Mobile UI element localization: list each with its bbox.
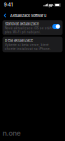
button[interactable]: Beta aktualizace xyxy=(2,37,62,52)
staticText: Beta aktualizace xyxy=(5,38,33,43)
staticText: 9:41 xyxy=(4,2,13,8)
staticText: Vyberte si beta verze, které xyxy=(5,43,49,47)
staticText: Aktualizace softwaru xyxy=(10,13,46,18)
staticText: n.one xyxy=(2,129,20,137)
staticText: Nové aktualizace iOS se stáhnou xyxy=(5,26,58,30)
staticText: chcete instalovat na iPhone. xyxy=(5,47,51,51)
staticText: přes Wi‑Fi při nabíjení. xyxy=(5,30,41,34)
staticText: Stahovat aktualizace xyxy=(5,21,39,26)
button[interactable]: Back xyxy=(0,12,10,19)
button[interactable]: Stahovat aktualizace xyxy=(2,20,62,35)
button[interactable]: Stahovat aktualizace automaticky xyxy=(52,24,60,29)
